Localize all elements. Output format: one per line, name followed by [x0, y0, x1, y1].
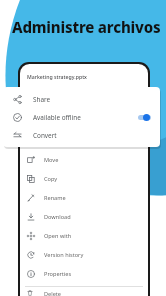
staticText: Marketing strategy.pptx — [27, 73, 87, 80]
staticText: Rename — [44, 194, 66, 202]
button[interactable]: Delete — [20, 290, 148, 296]
staticText: Delete — [44, 290, 62, 296]
button[interactable]: Download — [20, 207, 148, 226]
button[interactable]: Rename — [20, 188, 148, 207]
button[interactable]: Properties — [20, 264, 148, 283]
staticText: Share — [33, 95, 152, 104]
staticText: Copy — [44, 175, 58, 183]
other: Delete — [27, 290, 35, 296]
other: Properties — [27, 270, 35, 278]
button[interactable]: Move — [20, 150, 148, 169]
other: Convert — [13, 131, 22, 140]
button[interactable]: Copy — [20, 169, 148, 188]
other: Rename — [27, 194, 35, 202]
other: Open with — [27, 232, 35, 240]
staticText: Available offline — [33, 113, 136, 122]
staticText: Properties — [44, 270, 72, 278]
other: Available offline — [13, 113, 22, 122]
staticText: Version history — [44, 251, 84, 259]
staticText: Open with — [44, 232, 72, 240]
other: Move — [27, 156, 35, 164]
button[interactable]: Available offline — [3, 108, 160, 126]
staticText: Download — [44, 213, 71, 221]
staticText: Convert — [33, 131, 152, 140]
other: Copy — [27, 175, 35, 183]
button[interactable]: Version history — [20, 245, 148, 264]
staticText: Administre archivos — [12, 17, 161, 37]
other: Download — [27, 213, 35, 221]
button[interactable]: Open with — [20, 226, 148, 245]
other: Share — [13, 95, 22, 104]
staticText: Move — [44, 156, 59, 164]
button[interactable]: Convert — [3, 126, 160, 144]
other: Version history — [27, 251, 35, 259]
button[interactable]: Share — [3, 90, 160, 108]
